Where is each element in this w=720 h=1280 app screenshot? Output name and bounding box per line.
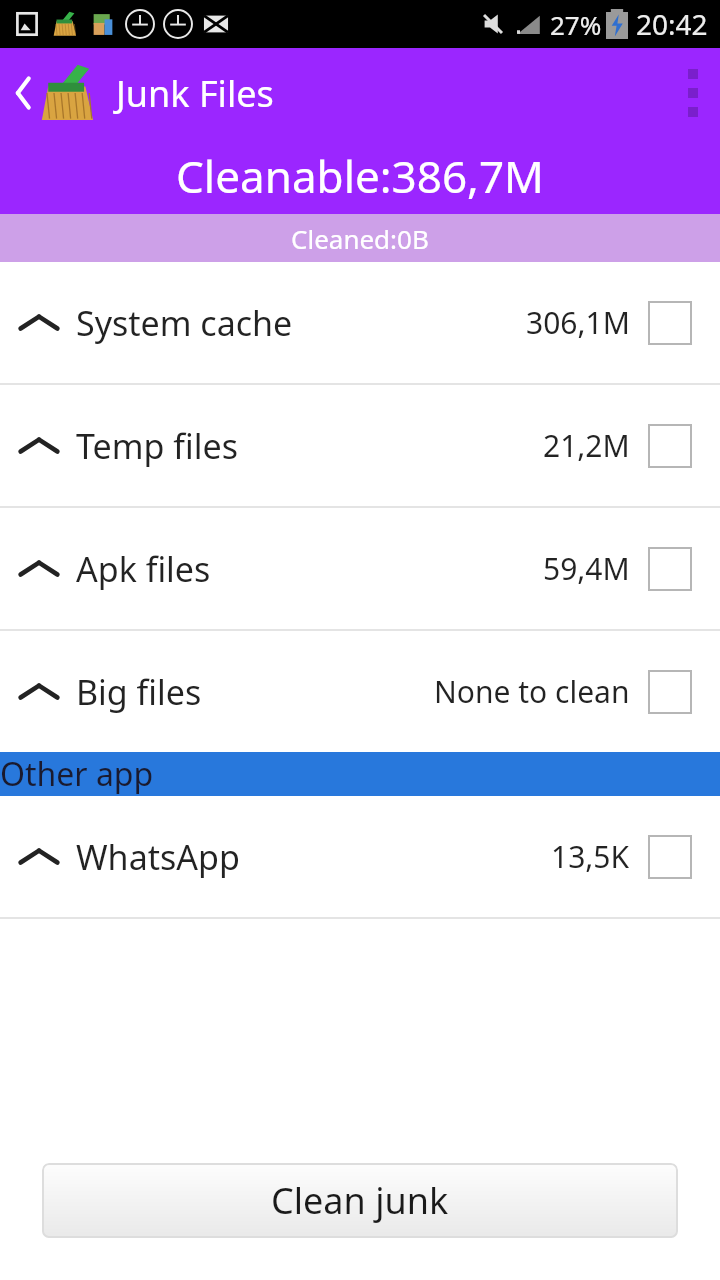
- staticText: 27%: [550, 7, 602, 42]
- button[interactable]: System cache: [0, 262, 720, 383]
- button[interactable]: Apk files: [0, 508, 720, 629]
- staticText: None to clean: [434, 671, 630, 712]
- button[interactable]: More options: [666, 48, 720, 138]
- staticText: Temp files: [76, 423, 238, 469]
- button[interactable]: Back: [6, 61, 106, 125]
- staticText: Other app: [0, 752, 154, 796]
- staticText: 20:42: [636, 5, 708, 43]
- staticText: 59,4M: [543, 548, 630, 589]
- button[interactable]: Temp files: [0, 385, 720, 506]
- staticText: Cleanable:386,7M: [176, 146, 544, 206]
- staticText: Cleaned:0B: [291, 221, 429, 256]
- button[interactable]: Clean junk: [42, 1163, 678, 1238]
- button[interactable]: Select System cache: [648, 301, 692, 345]
- staticText: 13,5K: [551, 836, 630, 877]
- button[interactable]: Select WhatsApp: [648, 835, 692, 879]
- staticText: WhatsApp: [76, 834, 240, 880]
- staticText: Big files: [76, 669, 202, 715]
- staticText: 306,1M: [526, 302, 630, 343]
- staticText: Apk files: [76, 546, 211, 592]
- button[interactable]: Select Big files: [648, 670, 692, 714]
- staticText: System cache: [76, 300, 293, 346]
- button[interactable]: Big files: [0, 631, 720, 752]
- button[interactable]: Select Apk files: [648, 547, 692, 591]
- button[interactable]: Select Temp files: [648, 424, 692, 468]
- staticText: Junk Files: [116, 69, 274, 118]
- staticText: 21,2M: [543, 425, 630, 466]
- staticText: Clean junk: [271, 1176, 449, 1225]
- button[interactable]: WhatsApp: [0, 796, 720, 917]
